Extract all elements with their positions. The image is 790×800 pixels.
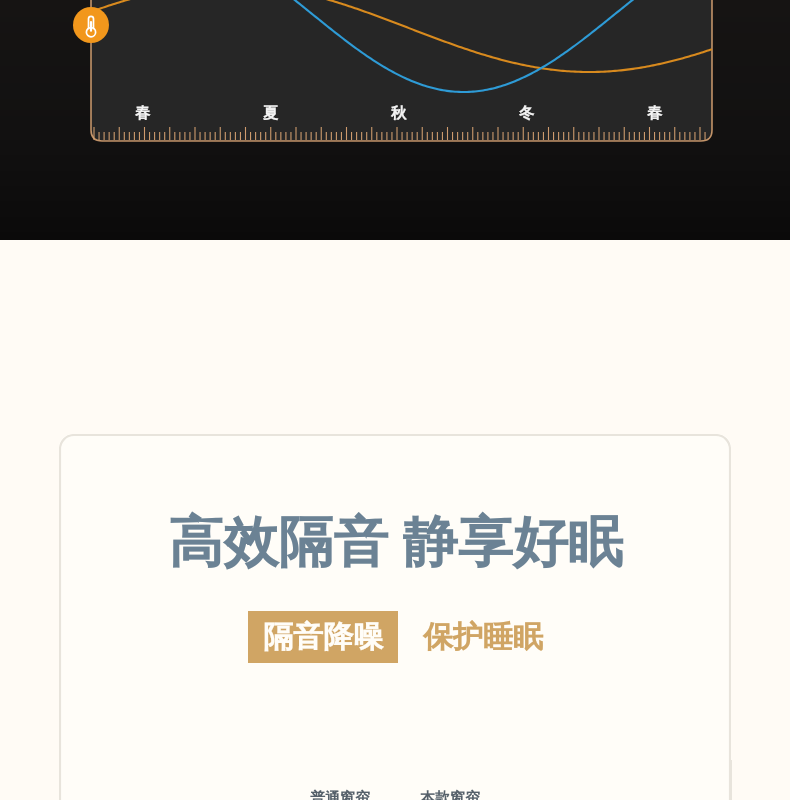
button[interactable]: 隔音降噪 xyxy=(263,618,383,656)
staticText: 秋 xyxy=(391,104,406,123)
button[interactable]: 高效隔音 静享好眠 xyxy=(59,434,731,800)
staticText: 保护睡眠 xyxy=(423,618,543,656)
staticText: 春 xyxy=(135,104,150,123)
staticText: 高效隔音 静享好眠 xyxy=(168,502,623,577)
button[interactable]: Temperature xyxy=(73,7,109,43)
staticText: 春 xyxy=(647,104,662,123)
button[interactable]: 普通窗帘 xyxy=(310,789,370,800)
staticText: 冬 xyxy=(519,104,534,123)
staticText: 隔音降噪 xyxy=(263,618,383,656)
staticText: 夏 xyxy=(263,104,278,123)
button[interactable]: 本款窗帘 xyxy=(420,789,480,800)
